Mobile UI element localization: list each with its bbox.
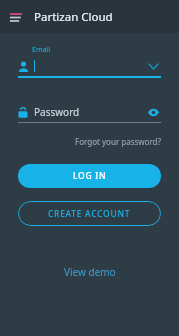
staticText: LOG IN xyxy=(73,170,107,182)
staticText: Partizan Cloud xyxy=(34,9,113,25)
button[interactable]: Password xyxy=(18,102,161,122)
button[interactable]: Show saved accounts xyxy=(18,56,161,76)
staticText: CREATE ACCOUNT xyxy=(48,208,131,220)
button[interactable]: View demo xyxy=(56,262,124,282)
button[interactable]: Open navigation menu xyxy=(3,4,29,30)
button[interactable]: Forgot your password? xyxy=(75,136,161,147)
staticText: Password xyxy=(34,105,80,119)
button[interactable]: LOG IN xyxy=(18,164,161,188)
button[interactable]: CREATE ACCOUNT xyxy=(18,201,161,226)
button[interactable]: Show password xyxy=(145,104,161,120)
staticText: Email xyxy=(32,45,50,55)
button[interactable]: Show saved accounts xyxy=(145,58,161,74)
